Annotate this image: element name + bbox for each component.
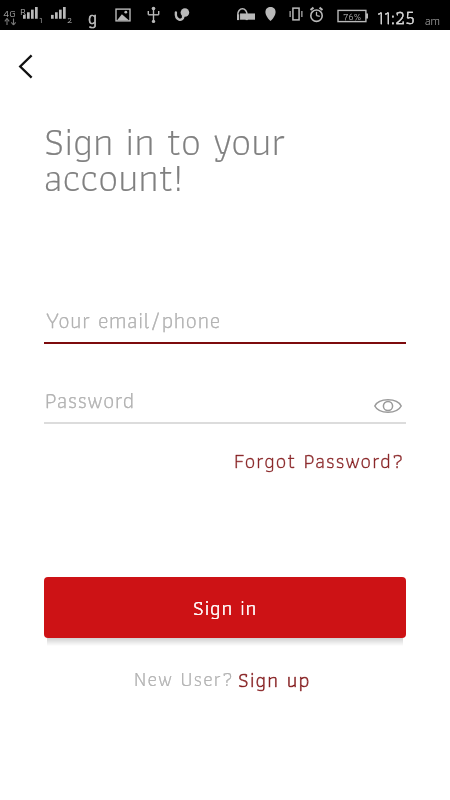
staticText: g: [88, 3, 97, 32]
button[interactable]: Forgot Password?: [234, 444, 405, 478]
staticText: Sign up: [238, 663, 311, 697]
staticText: Sign in: [193, 591, 258, 625]
staticText: Your email/phone: [46, 303, 221, 338]
staticText: Sign in to your account!: [44, 109, 286, 209]
staticText: Sign in to your account!: [44, 109, 286, 209]
staticText: g: [88, 3, 97, 32]
staticText: 11:25: [377, 3, 416, 32]
staticText: Your email/phone: [46, 303, 221, 338]
staticText: Password: [45, 383, 135, 418]
button[interactable]: Back: [3, 44, 47, 88]
staticText: New User?: [134, 663, 235, 695]
staticText: am: [425, 11, 441, 30]
button[interactable]: Sign in: [44, 577, 406, 638]
staticText: 76%: [343, 8, 362, 24]
staticText: 11:25: [377, 3, 416, 32]
staticText: R: [20, 2, 27, 20]
staticText: 2: [67, 13, 73, 27]
staticText: 4G: [3, 4, 16, 22]
staticText: Forgot Password?: [234, 444, 405, 478]
staticText: Sign up: [238, 663, 311, 697]
staticText: Password: [45, 383, 135, 418]
staticText: Sign in: [193, 591, 258, 625]
button[interactable]: Show password: [373, 391, 403, 420]
staticText: 1: [39, 13, 43, 27]
button[interactable]: Sign up: [238, 663, 311, 697]
staticText: New User?: [134, 663, 235, 695]
staticText: Forgot Password?: [234, 444, 405, 478]
